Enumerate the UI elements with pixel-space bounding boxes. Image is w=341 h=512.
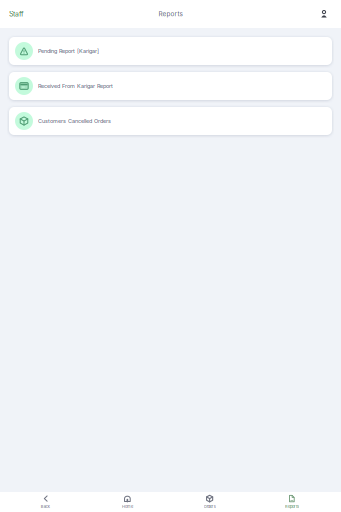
staticText: Customers Cancelled Orders <box>38 118 111 124</box>
button[interactable]: Received From Karigar Report <box>9 72 332 100</box>
staticText: Staff <box>9 10 24 18</box>
button[interactable]: Pending Report [Karigar] <box>9 37 332 65</box>
button[interactable]: Customers Cancelled Orders <box>9 107 332 135</box>
button[interactable]: Back <box>4 492 86 512</box>
staticText: Reports <box>285 504 299 509</box>
button[interactable]: Staff <box>0 5 30 23</box>
staticText: Received From Karigar Report <box>38 83 113 89</box>
staticText: Orders <box>204 504 216 509</box>
staticText: Home <box>122 504 133 509</box>
button[interactable]: Reports <box>251 492 333 512</box>
button[interactable]: Profile <box>314 5 341 23</box>
staticText: Back <box>41 504 50 509</box>
button[interactable]: Orders <box>168 492 251 512</box>
staticText: Pending Report [Karigar] <box>38 48 99 54</box>
staticText: Reports <box>158 10 182 18</box>
button[interactable]: Home <box>86 492 168 512</box>
